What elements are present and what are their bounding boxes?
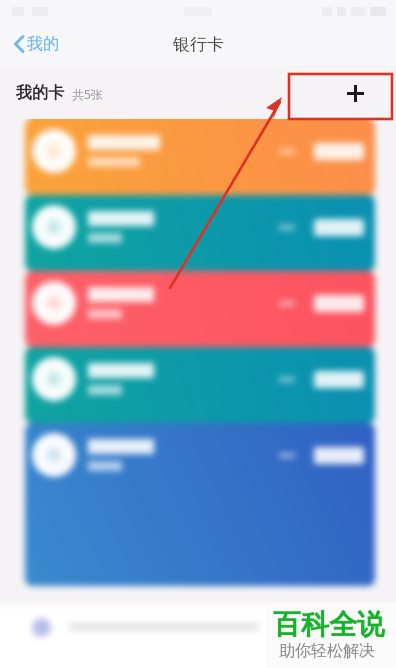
button[interactable]: [25, 423, 375, 586]
button[interactable]: [0, 605, 396, 649]
button[interactable]: [25, 195, 375, 271]
staticText: 共5张: [72, 86, 103, 102]
button[interactable]: 我的: [0, 26, 75, 62]
button[interactable]: [25, 119, 375, 195]
button[interactable]: [25, 271, 375, 347]
staticText: 我的: [27, 34, 59, 54]
staticText: 百科全说: [273, 607, 385, 642]
staticText: 银行卡: [173, 34, 224, 55]
staticText: 我的卡: [16, 83, 64, 103]
staticText: 助你轻松解决: [279, 641, 375, 661]
button[interactable]: [25, 347, 375, 423]
button[interactable]: Add card: [338, 76, 372, 110]
